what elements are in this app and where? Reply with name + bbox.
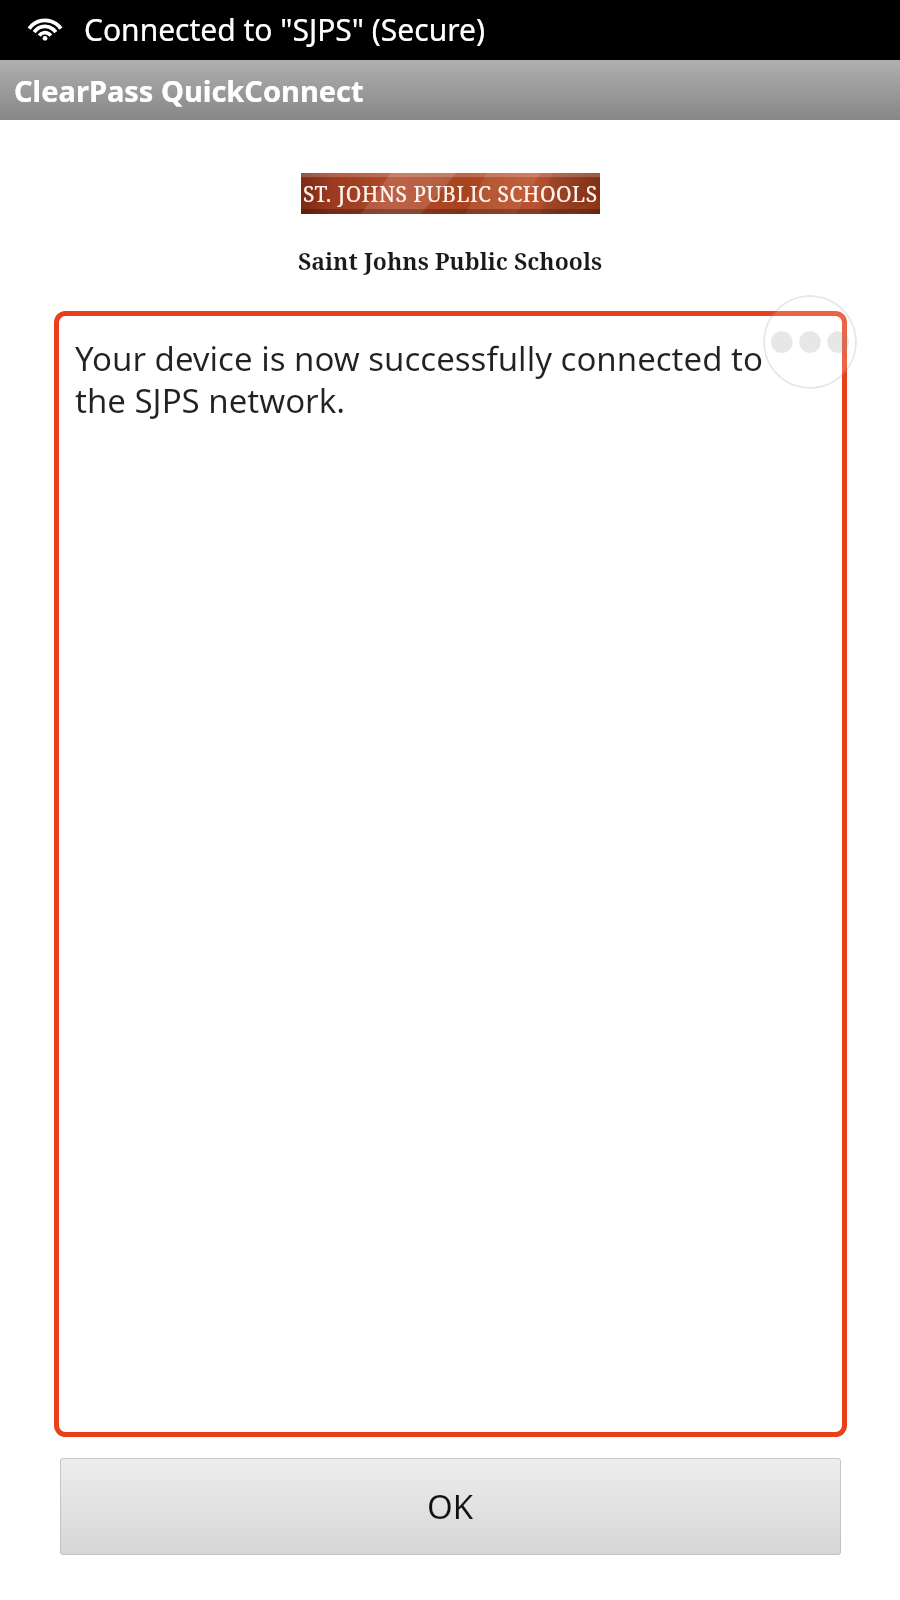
button[interactable]: Your device is now successfully connecte…	[54, 311, 847, 1437]
button[interactable]: More options	[763, 295, 857, 389]
staticText: ClearPass QuickConnect	[14, 71, 364, 110]
button[interactable]: OK	[60, 1458, 841, 1555]
staticText: Saint Johns Public Schools	[20, 245, 880, 276]
staticText: ST. JOHNS PUBLIC SCHOOLS	[303, 180, 598, 209]
staticText: Connected to "SJPS" (Secure)	[84, 9, 485, 50]
staticText: Your device is now successfully connecte…	[75, 336, 817, 423]
staticText: OK	[427, 1484, 474, 1529]
